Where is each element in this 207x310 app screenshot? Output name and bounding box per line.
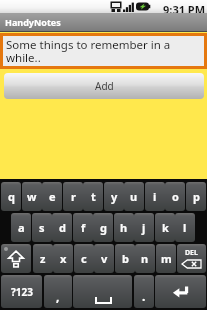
button[interactable]: z: [33, 244, 53, 273]
button[interactable]: Some things to remember in a while..: [3, 36, 204, 66]
button[interactable]: e: [42, 182, 62, 211]
staticText: Add: [95, 79, 114, 93]
staticText: z: [40, 251, 46, 266]
staticText: c: [81, 251, 87, 266]
staticText: m: [161, 251, 172, 266]
button[interactable]: d: [52, 213, 72, 242]
button[interactable]: ,: [44, 275, 72, 308]
button[interactable]: Add: [4, 73, 204, 99]
staticText: ?123: [11, 285, 33, 299]
button[interactable]: l: [175, 213, 195, 242]
other: Status icons: [110, 1, 151, 12]
staticText: u: [130, 189, 138, 204]
button[interactable]: s: [32, 213, 52, 242]
staticText: v: [101, 251, 108, 266]
staticText: g: [100, 220, 107, 235]
staticText: j: [142, 220, 146, 235]
staticText: b: [122, 251, 129, 266]
button[interactable]: w: [22, 182, 42, 211]
button[interactable]: Shift: [1, 244, 31, 273]
staticText: s: [39, 220, 45, 235]
button[interactable]: q: [1, 182, 21, 211]
other: Delete: [181, 259, 202, 269]
other: Enter: [171, 284, 190, 300]
button[interactable]: .: [134, 275, 154, 308]
button[interactable]: i: [145, 182, 165, 211]
staticText: t: [91, 189, 96, 204]
button[interactable]: x: [53, 244, 73, 273]
button[interactable]: r: [63, 182, 83, 211]
staticText: f: [81, 220, 86, 235]
button[interactable]: t: [83, 182, 103, 211]
button[interactable]: h: [114, 213, 134, 242]
button[interactable]: j: [134, 213, 154, 242]
staticText: DEL: [185, 248, 198, 258]
staticText: y: [111, 189, 118, 204]
staticText: e: [49, 189, 56, 204]
staticText: HandyNotes: [5, 16, 61, 28]
button[interactable]: f: [73, 213, 93, 242]
staticText: k: [162, 220, 169, 235]
staticText: n: [141, 251, 149, 266]
staticText: q: [8, 189, 15, 204]
button[interactable]: b: [115, 244, 135, 273]
staticText: 9:31 PM: [163, 2, 206, 15]
staticText: ,: [56, 288, 60, 304]
button[interactable]: c: [74, 244, 94, 273]
staticText: i: [153, 189, 157, 204]
button[interactable]: p: [186, 182, 206, 211]
staticText: x: [60, 251, 67, 266]
staticText: h: [120, 220, 128, 235]
staticText: p: [193, 189, 200, 204]
staticText: d: [59, 220, 66, 235]
staticText: Some things to remember in a while..: [6, 37, 204, 65]
button[interactable]: k: [155, 213, 175, 242]
button[interactable]: Enter: [155, 275, 206, 308]
button[interactable]: m: [156, 244, 176, 273]
staticText: l: [183, 220, 187, 235]
button[interactable]: a: [11, 213, 31, 242]
staticText: w: [27, 189, 37, 204]
other: Shift: [8, 250, 24, 268]
button[interactable]: Space: [73, 275, 132, 308]
staticText: .: [142, 288, 146, 304]
button[interactable]: v: [94, 244, 114, 273]
button[interactable]: u: [124, 182, 144, 211]
staticText: a: [18, 220, 25, 235]
button[interactable]: ?123: [1, 275, 42, 308]
button[interactable]: y: [104, 182, 124, 211]
other: Space: [95, 297, 112, 304]
staticText: r: [71, 189, 76, 204]
button[interactable]: DEL: [177, 244, 206, 273]
button[interactable]: o: [165, 182, 185, 211]
staticText: o: [172, 189, 179, 204]
button[interactable]: g: [93, 213, 113, 242]
button[interactable]: n: [135, 244, 155, 273]
